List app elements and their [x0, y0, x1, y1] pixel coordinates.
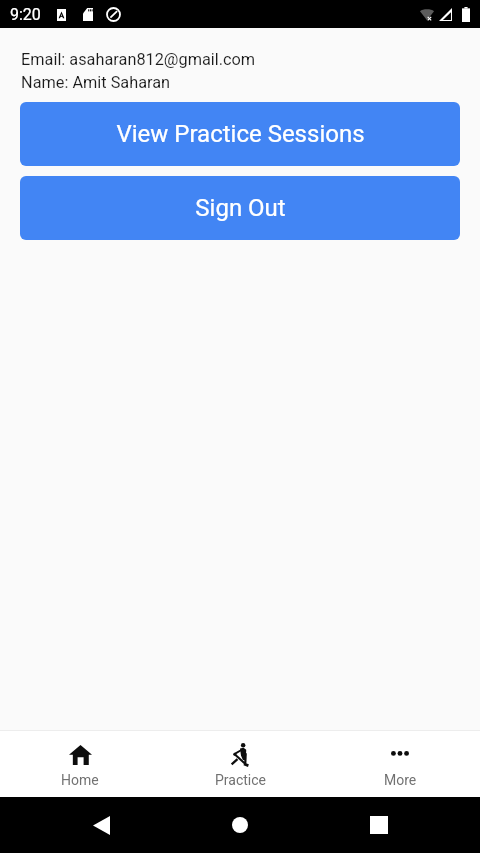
staticText: View Practice Sessions	[116, 120, 365, 148]
button[interactable]: Sign Out	[20, 176, 460, 240]
button[interactable]: More	[320, 731, 480, 788]
staticText: 9:20	[10, 5, 41, 24]
button[interactable]: Recent apps	[357, 803, 401, 847]
staticText: Email: asaharan812@gmail.com Name: Amit …	[21, 50, 256, 92]
button[interactable]: Practice	[160, 731, 320, 788]
button[interactable]: View Practice Sessions	[20, 102, 460, 166]
button[interactable]: Home	[218, 803, 262, 847]
staticText: More	[384, 772, 417, 788]
staticText: Sign Out	[195, 194, 286, 222]
button[interactable]: Home	[0, 731, 160, 788]
button[interactable]: Back	[79, 803, 123, 847]
staticText: Practice	[215, 772, 266, 788]
staticText: Home	[61, 772, 99, 788]
